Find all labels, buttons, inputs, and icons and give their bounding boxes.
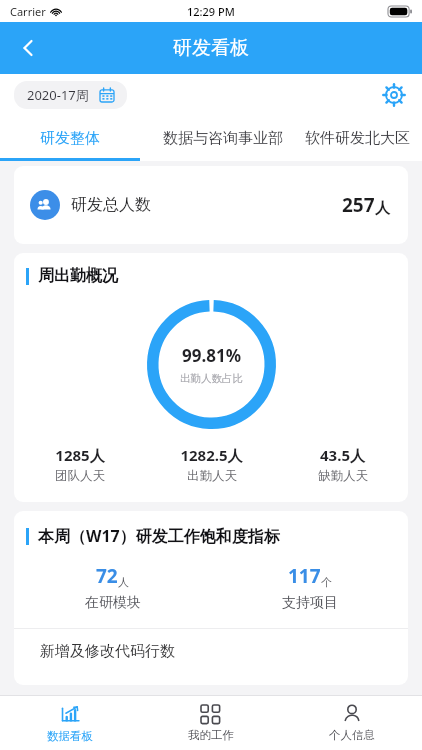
staticText: 个人信息 xyxy=(329,728,375,742)
staticText: 人 xyxy=(375,199,390,218)
button[interactable]: 研发总人数 xyxy=(14,166,408,244)
staticText: 99.81% xyxy=(182,344,242,367)
button[interactable]: 我的工作 xyxy=(140,696,281,750)
staticText: 72 xyxy=(96,563,118,589)
staticText: 周出勤概况 xyxy=(38,266,118,286)
staticText: 43.5人 xyxy=(320,445,365,465)
staticText: 257 xyxy=(342,192,375,218)
button[interactable]: 43.5人 xyxy=(277,445,408,484)
staticText: 2020-17周 xyxy=(27,86,89,104)
staticText: 1282.5人 xyxy=(180,445,243,465)
button[interactable]: Back xyxy=(6,26,50,70)
button[interactable]: 1282.5人 xyxy=(146,445,277,484)
button[interactable]: 数据与咨询事业部 xyxy=(140,115,305,161)
staticText: 新增及修改代码行数 xyxy=(40,642,175,661)
staticText: 我的工作 xyxy=(188,728,234,742)
button[interactable]: 2020-17周 xyxy=(14,81,127,109)
staticText: 在研模块 xyxy=(85,594,141,612)
button[interactable]: 周出勤概况 xyxy=(14,253,408,502)
staticText: 缺勤人天 xyxy=(318,468,368,484)
staticText: 12:29 PM xyxy=(187,4,235,19)
staticText: Carrier xyxy=(10,4,46,19)
staticText: 1285人 xyxy=(55,445,105,465)
staticText: 人 xyxy=(118,575,129,589)
button[interactable]: 软件研发北大区 xyxy=(305,115,422,161)
button[interactable]: 72 xyxy=(14,563,211,612)
button[interactable]: 数据看板 xyxy=(0,696,140,750)
staticText: 研发整体 xyxy=(40,129,100,148)
button[interactable]: 本周（W17）研发工作饱和度指标 xyxy=(14,511,408,685)
button[interactable]: 1285人 xyxy=(14,445,146,484)
staticText: 数据与咨询事业部 xyxy=(163,129,283,148)
staticText: 数据看板 xyxy=(47,729,93,743)
staticText: 出勤人数占比 xyxy=(180,372,243,385)
staticText: 软件研发北大区 xyxy=(305,129,410,148)
staticText: 研发看板 xyxy=(173,36,249,60)
button[interactable]: 研发整体 xyxy=(0,115,140,161)
button[interactable]: 个人信息 xyxy=(281,696,422,750)
staticText: 出勤人天 xyxy=(187,468,237,484)
staticText: 117 xyxy=(288,563,321,589)
button[interactable]: Settings xyxy=(374,75,414,115)
staticText: 研发总人数 xyxy=(71,195,151,215)
staticText: 支持项目 xyxy=(282,594,338,612)
staticText: 个 xyxy=(321,575,332,589)
button[interactable]: 117 xyxy=(211,563,408,612)
staticText: 本周（W17）研发工作饱和度指标 xyxy=(38,525,280,547)
staticText: 团队人天 xyxy=(55,468,105,484)
